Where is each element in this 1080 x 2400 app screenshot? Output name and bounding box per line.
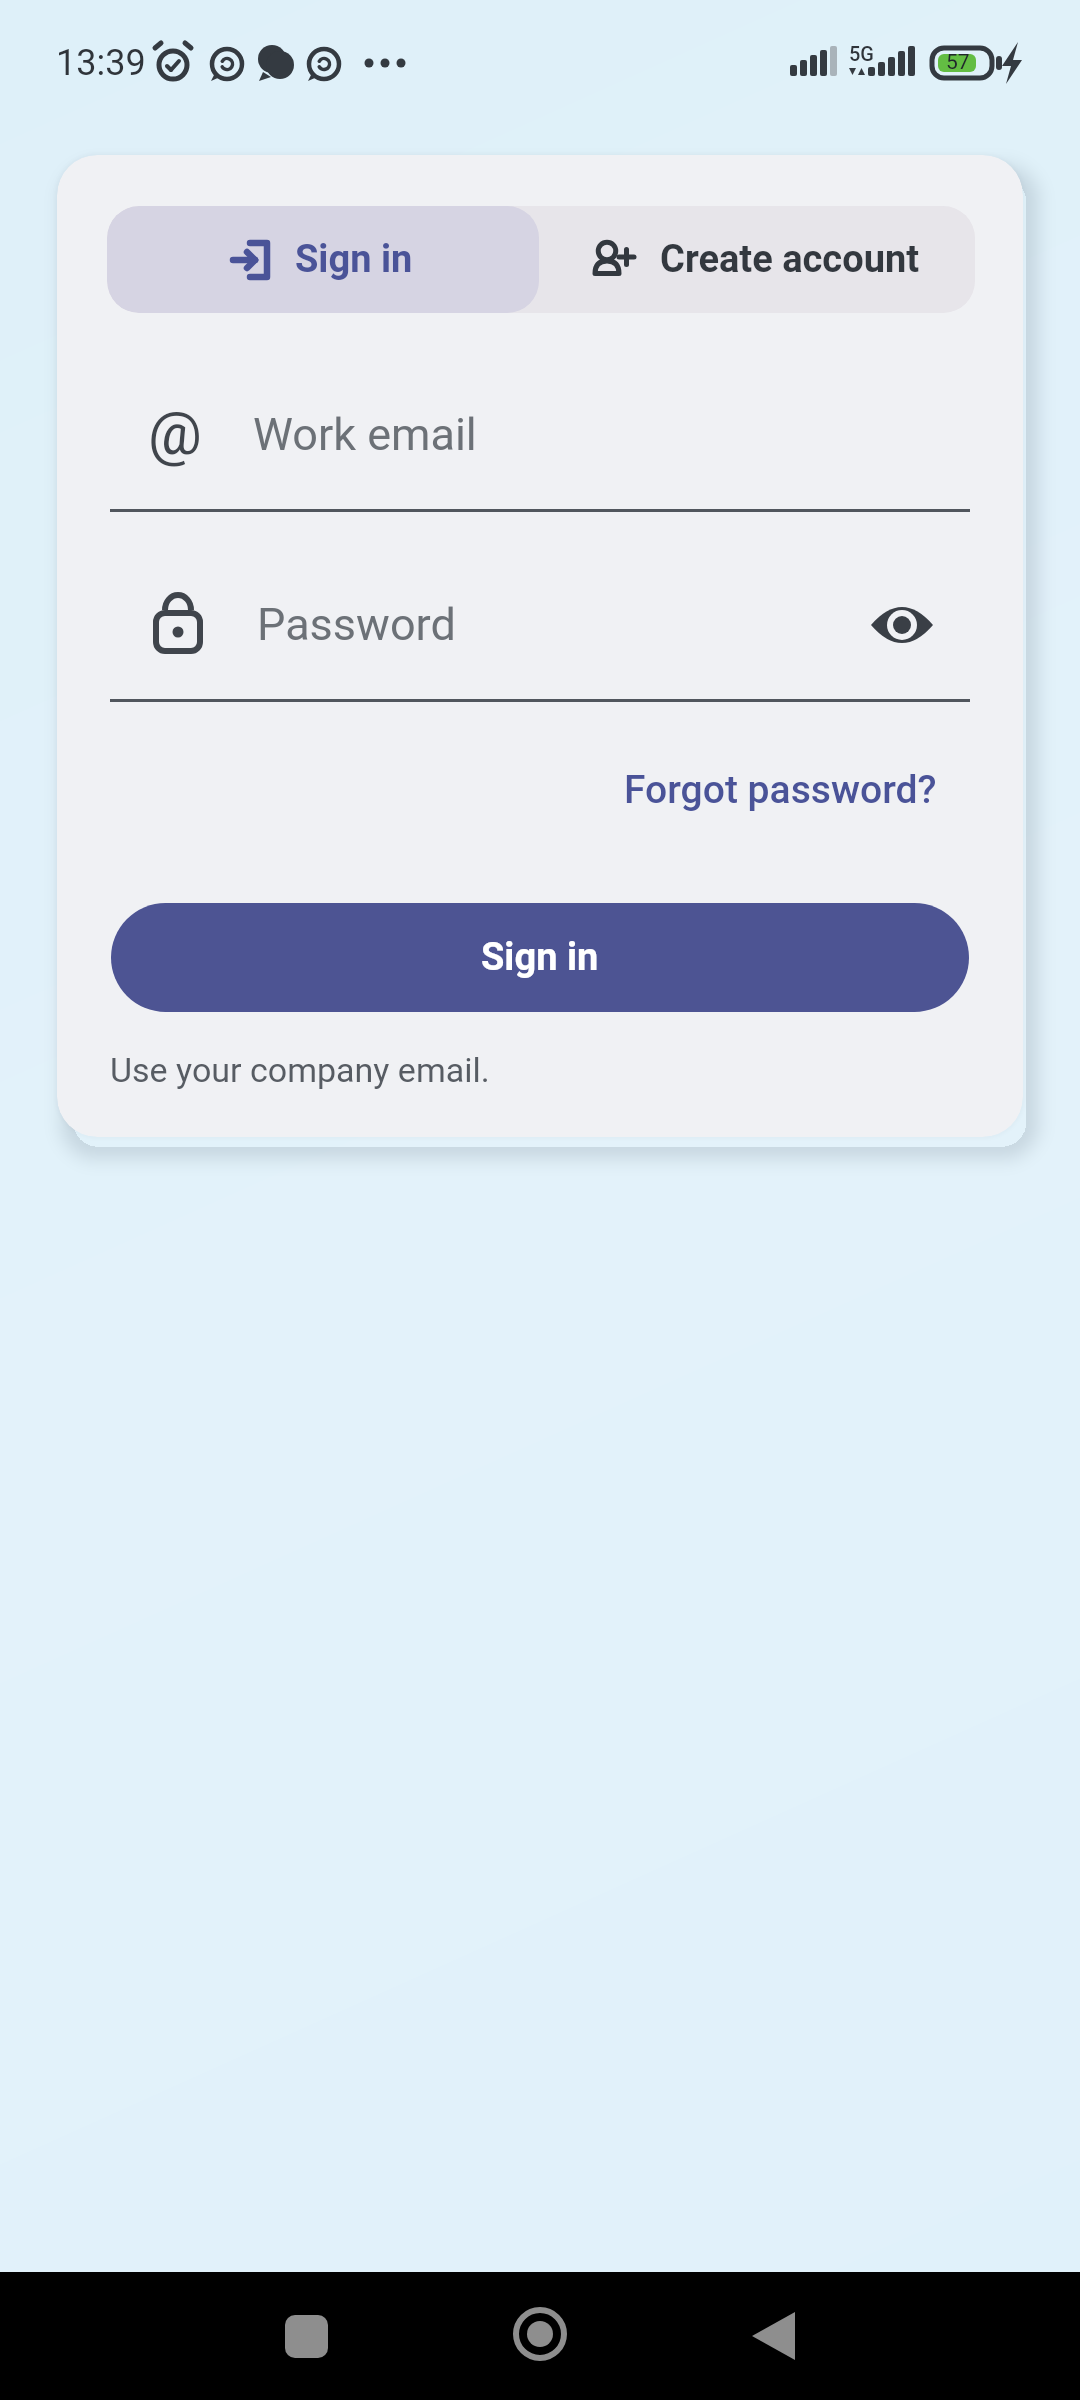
staticText: 13:39 bbox=[56, 42, 146, 84]
staticText: 5G bbox=[849, 42, 874, 65]
button[interactable]: Create account bbox=[539, 206, 975, 313]
staticText: Use your company email. bbox=[110, 1050, 490, 1090]
staticText: Work email bbox=[253, 408, 477, 461]
staticText: Create account bbox=[660, 237, 920, 282]
button[interactable]: Sign in bbox=[107, 206, 539, 313]
staticText: Password bbox=[257, 598, 456, 651]
button[interactable]: @ bbox=[107, 370, 973, 515]
button[interactable]: Forgot password? bbox=[624, 767, 937, 813]
button[interactable] bbox=[867, 597, 937, 653]
button[interactable] bbox=[270, 2300, 342, 2372]
button[interactable] bbox=[738, 2300, 810, 2372]
button[interactable] bbox=[504, 2298, 576, 2370]
staticText: Sign in bbox=[481, 935, 599, 980]
staticText: Sign in bbox=[295, 237, 413, 282]
button[interactable]: Sign in bbox=[111, 903, 969, 1012]
button[interactable]: Password bbox=[107, 560, 973, 705]
staticText: @ bbox=[148, 398, 202, 468]
staticText: 57 bbox=[946, 50, 970, 75]
